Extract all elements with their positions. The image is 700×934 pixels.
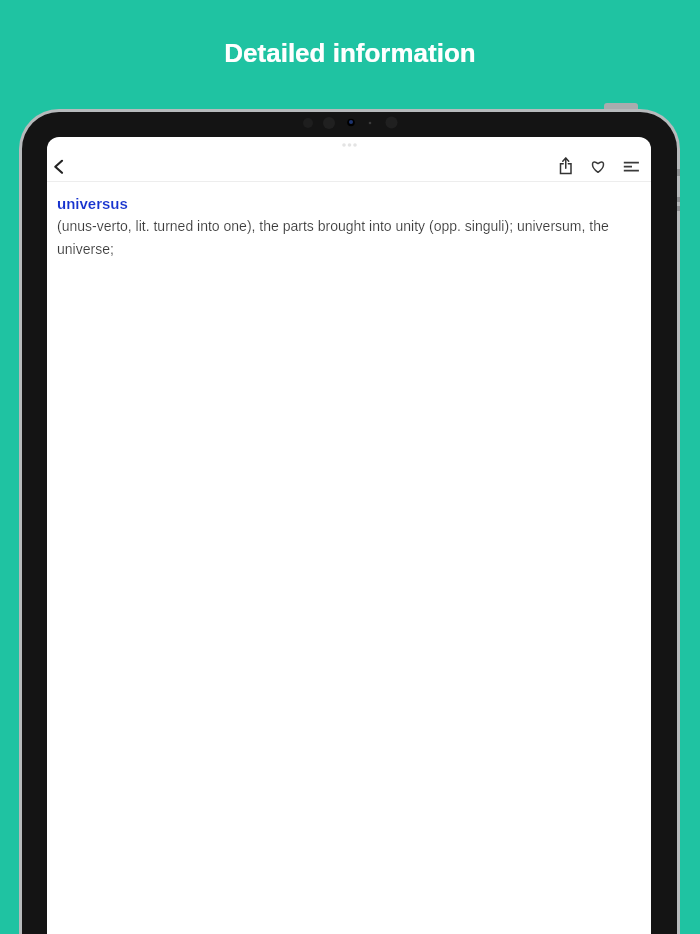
button[interactable] <box>619 154 645 179</box>
staticText: (unus-verto, lit. turned into one), the … <box>57 218 609 257</box>
button[interactable] <box>47 155 71 178</box>
button[interactable] <box>553 154 579 180</box>
staticText: universus <box>57 195 128 212</box>
staticText: Detailed information <box>0 38 700 67</box>
button[interactable] <box>586 154 610 179</box>
